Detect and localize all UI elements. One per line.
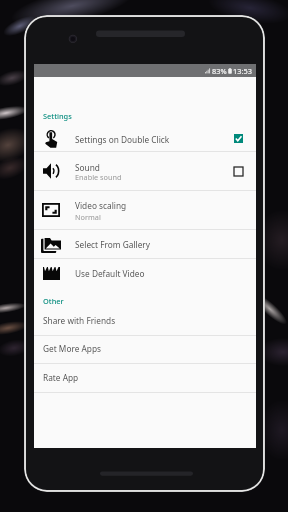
button[interactable]: Checked [230, 130, 246, 146]
button[interactable]: Settings on Double Click [34, 122, 256, 151]
staticText: 13:53 [233, 66, 252, 76]
button[interactable]: Rate App [34, 363, 256, 392]
staticText: Settings on Double Click [75, 134, 170, 145]
button[interactable]: Unchecked [230, 163, 246, 179]
staticText: Use Default Video [75, 268, 145, 279]
staticText: Sound [75, 162, 100, 173]
button[interactable]: Sound [34, 151, 256, 190]
staticText: Select From Gallery [75, 239, 151, 250]
staticText: Video scaling [75, 200, 127, 211]
button[interactable]: Share with Friends [34, 306, 256, 335]
staticText: Rate App [43, 372, 79, 383]
button[interactable]: Use Default Video [34, 258, 256, 287]
staticText: Enable sound [75, 172, 122, 182]
staticText: Normal [75, 212, 101, 222]
staticText: Settings [43, 111, 72, 121]
button[interactable]: Video scaling [34, 190, 256, 229]
staticText: Get More Apps [43, 343, 101, 354]
staticText: 83% [212, 66, 227, 76]
button[interactable]: Get More Apps [34, 335, 256, 364]
staticText: Other [43, 296, 64, 306]
button[interactable]: Select From Gallery [34, 229, 256, 258]
staticText: Share with Friends [43, 315, 116, 326]
